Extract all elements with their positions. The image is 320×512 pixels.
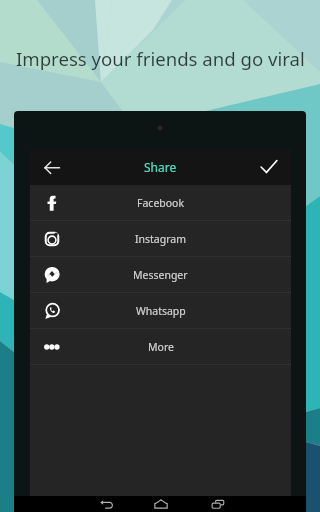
button[interactable]: More bbox=[30, 329, 291, 365]
button[interactable]: Back bbox=[38, 153, 66, 181]
button[interactable]: Home bbox=[152, 496, 170, 512]
button[interactable]: Whatsapp bbox=[30, 293, 291, 329]
button[interactable]: Facebook bbox=[30, 185, 291, 221]
staticText: Whatsapp bbox=[136, 304, 186, 318]
button[interactable]: Recent apps bbox=[209, 496, 227, 512]
staticText: Facebook bbox=[137, 196, 185, 210]
staticText: Instagram bbox=[135, 232, 187, 246]
staticText: Impress your friends and go viral bbox=[16, 46, 305, 71]
button[interactable]: Messenger bbox=[30, 257, 291, 293]
staticText: More bbox=[148, 340, 174, 354]
button[interactable]: Instagram bbox=[30, 221, 291, 257]
button[interactable]: Done bbox=[255, 153, 283, 181]
staticText: Messenger bbox=[133, 268, 188, 282]
button[interactable]: Back bbox=[97, 496, 115, 512]
staticText: Share bbox=[144, 159, 177, 175]
